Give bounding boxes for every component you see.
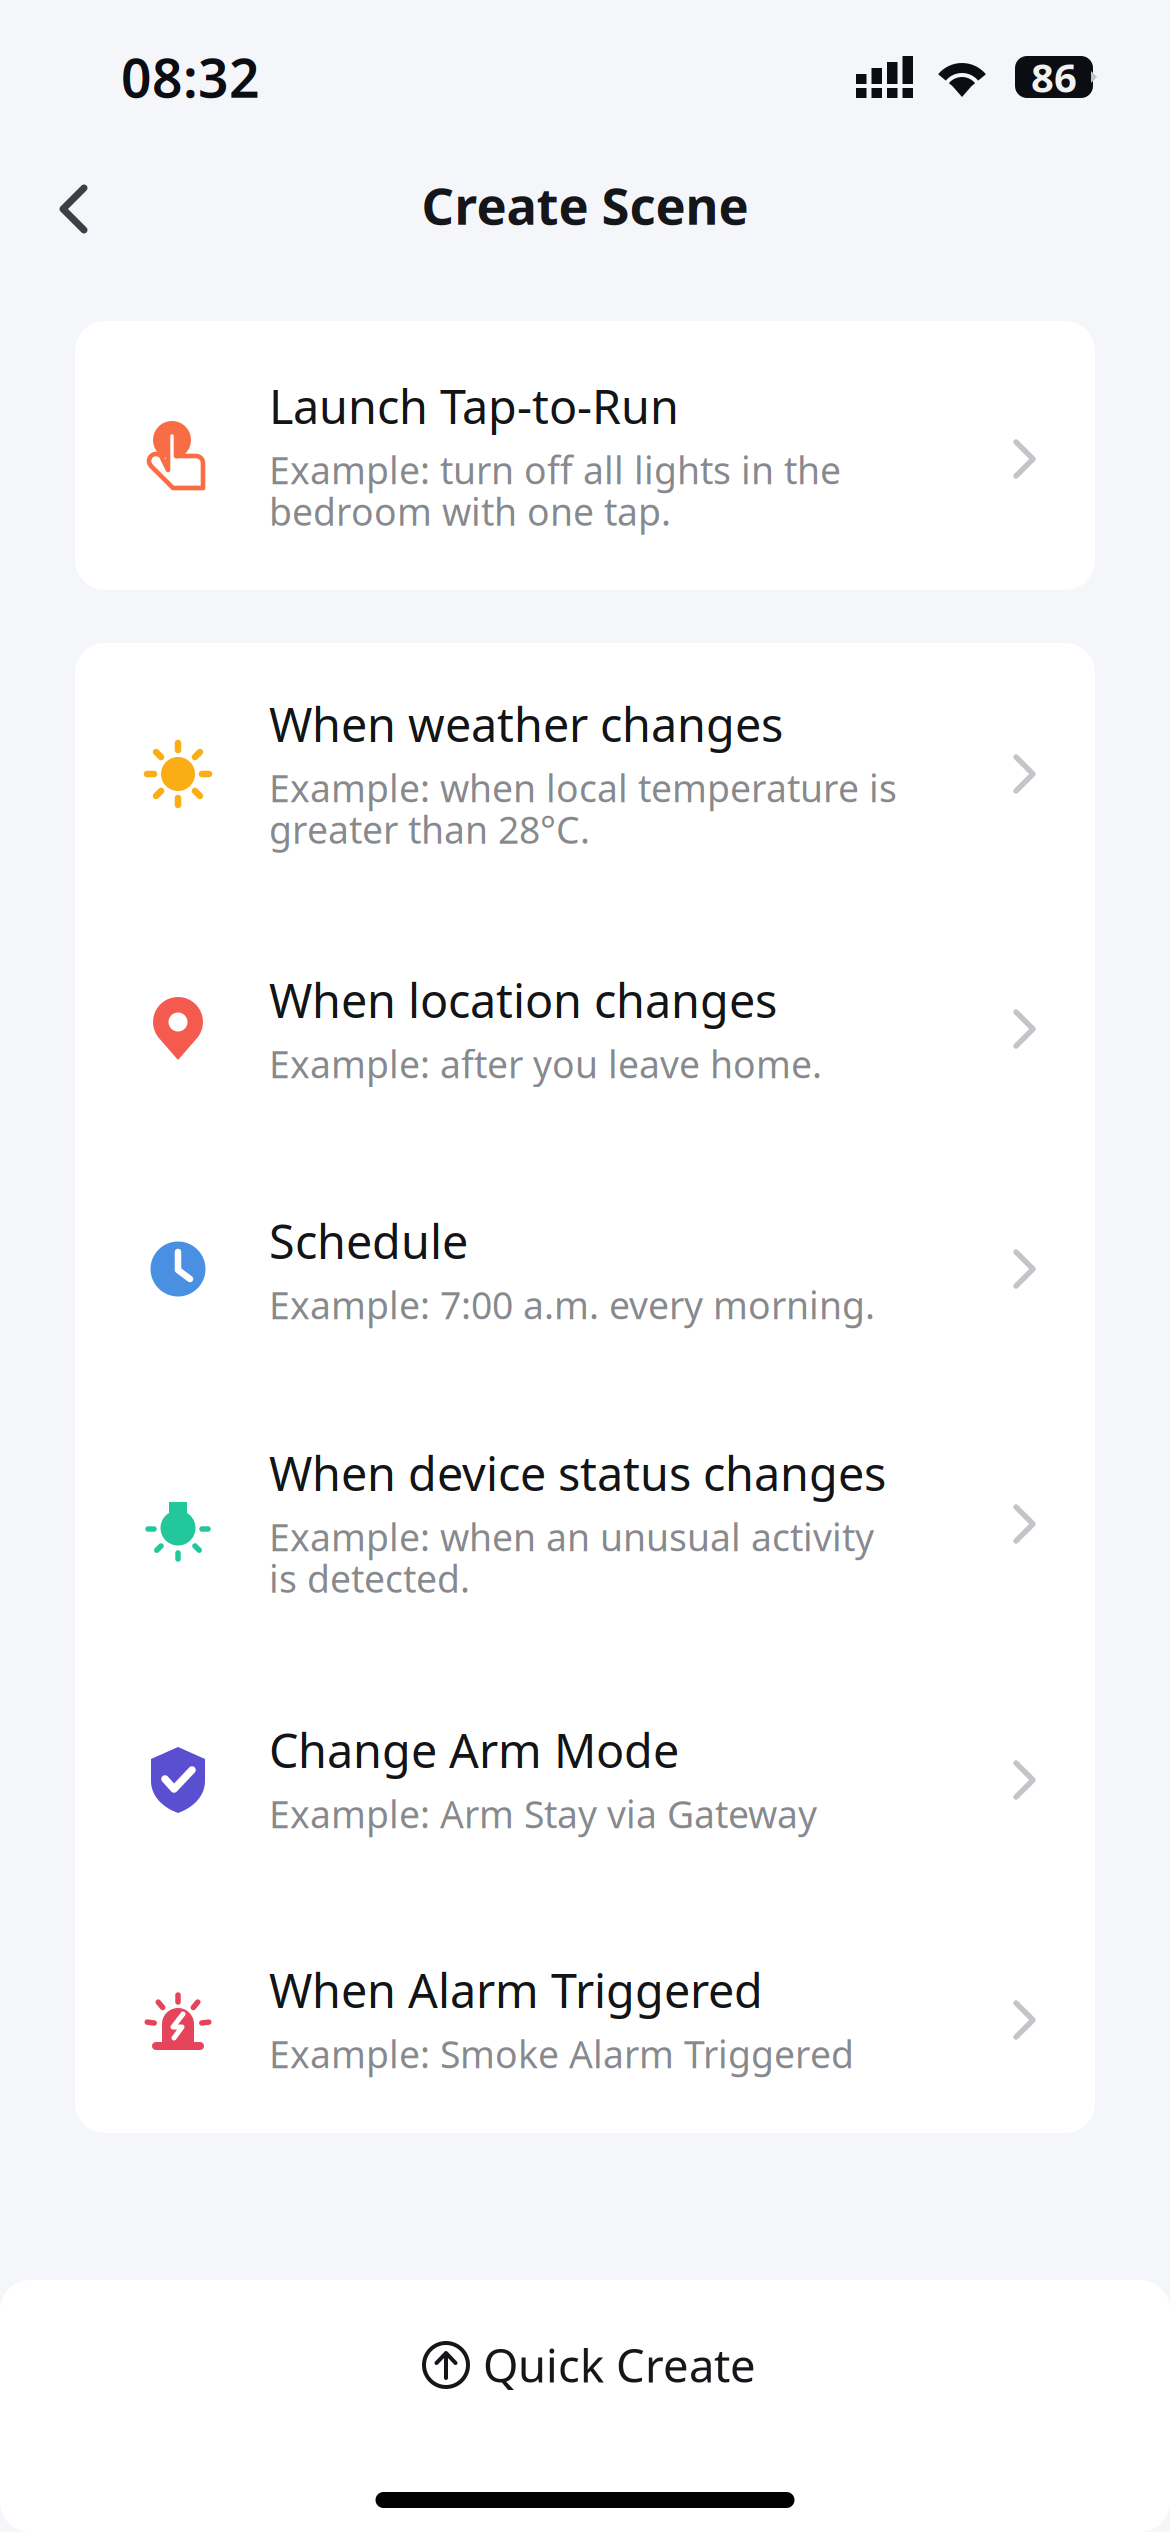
- staticText: Example: Arm Stay via Gateway: [269, 1789, 817, 1839]
- staticText: When location changes: [269, 969, 777, 1031]
- staticText: When weather changes: [269, 693, 783, 755]
- button[interactable]: Change Arm Mode: [75, 1657, 1095, 1895]
- staticText: greater than 28°C.: [269, 804, 590, 854]
- staticText: Change Arm Mode: [269, 1719, 679, 1781]
- staticText: Launch Tap-to-Run: [269, 375, 679, 437]
- button[interactable]: When weather changes: [75, 643, 1095, 912]
- button[interactable]: When device status changes: [75, 1388, 1095, 1657]
- staticText: Create Scene: [421, 171, 748, 239]
- staticText: When device status changes: [269, 1442, 886, 1504]
- staticText: bedroom with one tap.: [269, 486, 671, 536]
- staticText: 08:32: [121, 42, 260, 112]
- staticText: Example: 7:00 a.m. every morning.: [269, 1280, 875, 1330]
- button[interactable]: Quick Create: [0, 2280, 1170, 2450]
- staticText: Example: when an unusual activity: [269, 1512, 874, 1562]
- staticText: Example: Smoke Alarm Triggered: [269, 2029, 854, 2079]
- button[interactable]: Schedule: [75, 1150, 1095, 1388]
- button[interactable]: When Alarm Triggered: [75, 1895, 1095, 2133]
- staticText: Schedule: [269, 1210, 468, 1272]
- staticText: Quick Create: [483, 2335, 756, 2395]
- staticText: When Alarm Triggered: [269, 1959, 763, 2021]
- staticText: Example: after you leave home.: [269, 1039, 822, 1089]
- staticText: Example: turn off all lights in the: [269, 445, 841, 495]
- button[interactable]: Launch Tap-to-Run: [75, 321, 1095, 590]
- staticText: 86: [1031, 50, 1077, 103]
- button[interactable]: When location changes: [75, 912, 1095, 1150]
- staticText: is detected.: [269, 1553, 470, 1603]
- staticText: Example: when local temperature is: [269, 763, 897, 813]
- button[interactable]: Back: [36, 162, 112, 256]
